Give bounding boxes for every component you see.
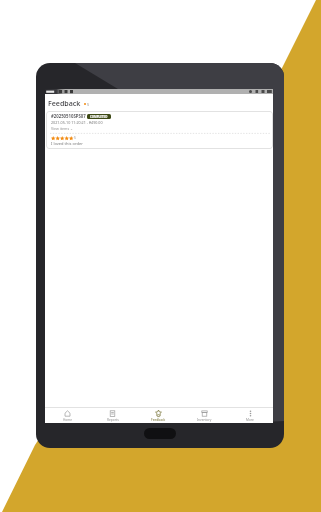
- button[interactable]: Reports: [90, 408, 135, 423]
- staticText: Feedback: [151, 418, 166, 422]
- staticText: Inventory: [197, 418, 212, 422]
- staticText: #20250510SPS07: [51, 113, 86, 119]
- staticText: 2021-05-10 11:20:21 - ₱490.00: [51, 120, 103, 125]
- button[interactable]: #20250510SPS07: [46, 111, 273, 149]
- button[interactable]: View items ⌄: [51, 126, 74, 131]
- button[interactable]: Home: [45, 408, 90, 423]
- staticText: Reports: [107, 418, 119, 422]
- staticText: Feedback: [48, 99, 81, 109]
- staticText: More: [246, 418, 254, 422]
- staticText: Home: [63, 418, 73, 422]
- staticText: 5: [87, 102, 90, 107]
- button[interactable]: More: [227, 408, 273, 423]
- button[interactable]: Inventory: [181, 408, 227, 423]
- staticText: I loved this order: [51, 141, 83, 146]
- button[interactable]: Feedback: [135, 408, 181, 423]
- staticText: COMPLETED: [90, 115, 108, 119]
- staticText: 5: [74, 136, 76, 140]
